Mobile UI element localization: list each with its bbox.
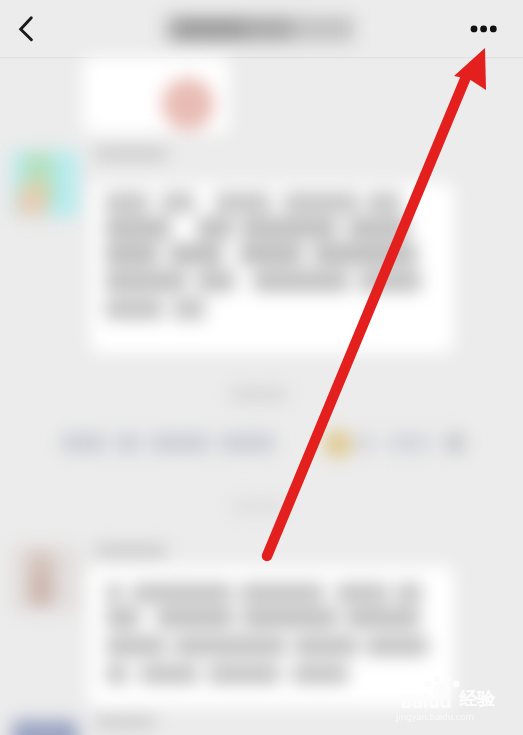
- staticText: jingyan.baidu.com: [396, 710, 474, 722]
- staticText: Baidu: [400, 688, 452, 714]
- staticText: 经验: [459, 688, 495, 711]
- button[interactable]: More options: [460, 7, 504, 51]
- button[interactable]: Back: [4, 6, 50, 52]
